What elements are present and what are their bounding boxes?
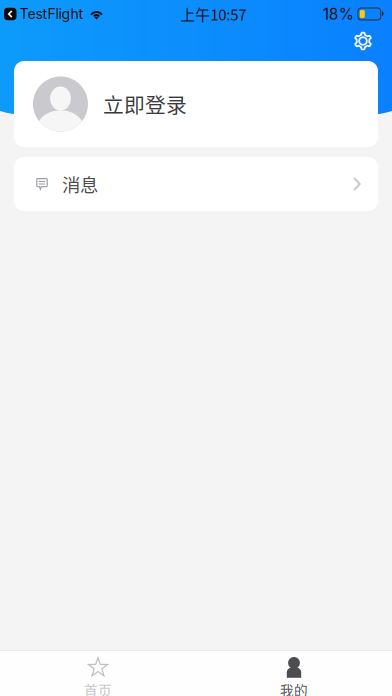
staticText: 我的 (280, 680, 308, 696)
staticText: TestFlight (19, 5, 83, 22)
staticText: 18% (323, 5, 354, 23)
button[interactable]: 首页 (0, 651, 196, 696)
button[interactable]: 我的 (196, 651, 392, 696)
staticText: 立即登录 (103, 89, 187, 119)
button[interactable]: 消息 (14, 157, 378, 211)
staticText: 上午10:57 (180, 3, 246, 25)
button[interactable]: 立即登录 (14, 61, 378, 147)
staticText: 首页 (84, 680, 112, 696)
button[interactable]: Settings (346, 25, 380, 59)
staticText: 消息 (62, 171, 98, 197)
